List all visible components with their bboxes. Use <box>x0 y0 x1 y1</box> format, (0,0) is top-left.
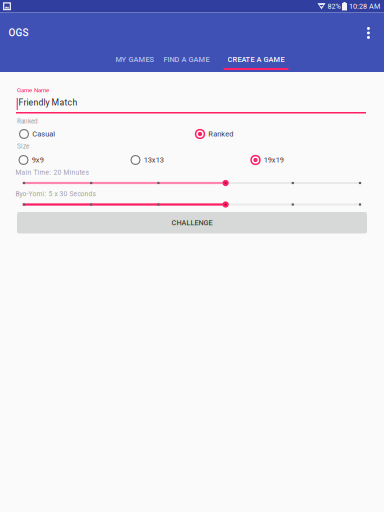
button[interactable]: CHALLENGE <box>17 212 367 233</box>
button[interactable]: Casual <box>19 127 195 140</box>
button[interactable]: Ranked <box>195 127 369 140</box>
staticText: Ranked <box>208 130 233 138</box>
staticText: OGS <box>8 27 28 39</box>
staticText: 9x9 <box>32 156 44 164</box>
button[interactable]: Main time <box>22 177 361 188</box>
staticText: 10:28 AM <box>349 2 380 10</box>
staticText: Byo-Yomi: 5 x 30 Seconds <box>15 190 95 198</box>
button[interactable]: CREATE A GAME <box>223 49 288 70</box>
staticText: 13x13 <box>144 156 164 164</box>
staticText: FIND A GAME <box>163 55 209 64</box>
staticText: Friendly Match <box>18 97 77 108</box>
staticText: 82% <box>327 2 340 10</box>
button[interactable]: MY GAMES <box>109 49 161 70</box>
staticText: CHALLENGE <box>171 218 212 227</box>
staticText: Game Name <box>17 86 49 94</box>
staticText: Casual <box>32 130 55 138</box>
staticText: Main Time: 20 Minutes <box>15 168 88 176</box>
staticText: Ranked <box>17 117 38 125</box>
button[interactable]: 19x19 <box>250 153 368 166</box>
button[interactable]: FIND A GAME <box>156 49 216 70</box>
button[interactable]: 13x13 <box>130 153 250 166</box>
staticText: 19x19 <box>264 156 284 164</box>
button[interactable]: More options <box>360 22 377 44</box>
button[interactable]: 9x9 <box>18 153 130 166</box>
staticText: CREATE A GAME <box>227 55 284 64</box>
button[interactable]: Byo-yomi period <box>22 199 361 210</box>
staticText: Size <box>17 142 29 150</box>
staticText: MY GAMES <box>115 55 154 64</box>
